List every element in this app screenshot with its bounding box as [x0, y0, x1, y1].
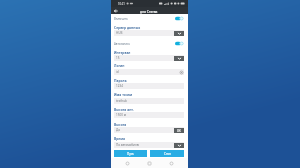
- staticText: ОК: [177, 129, 181, 133]
- button[interactable]: Автозапись: [114, 39, 184, 48]
- button[interactable]: 1234: [114, 83, 184, 89]
- button[interactable]: Да: [114, 127, 184, 133]
- button[interactable]: Recents: [166, 158, 177, 168]
- button[interactable]: Home: [144, 158, 155, 168]
- button[interactable]: Back: [122, 158, 133, 168]
- staticText: HUB: [116, 31, 123, 35]
- staticText: id: [116, 70, 119, 74]
- staticText: Да: [116, 128, 120, 132]
- staticText: Высота ант.: [114, 107, 134, 111]
- button[interactable]: По автомобилю: [114, 142, 184, 148]
- button[interactable]: id: [114, 69, 184, 75]
- button[interactable]: Включить: [114, 14, 184, 23]
- staticText: Время: [114, 136, 125, 140]
- staticText: для Статва: [140, 9, 158, 13]
- staticText: 1234: [116, 84, 123, 88]
- staticText: Пуск: [127, 152, 134, 156]
- staticText: По автомобилю: [116, 143, 140, 147]
- button[interactable]: HUB: [114, 30, 184, 36]
- staticText: Интервал: [114, 50, 131, 54]
- staticText: Пароль: [114, 78, 127, 82]
- staticText: testhub: [116, 99, 127, 103]
- button[interactable]: testhub: [114, 98, 184, 104]
- button[interactable]: Back: [111, 7, 120, 14]
- staticText: 10:21: [118, 2, 125, 6]
- staticText: 1500 м: [116, 113, 126, 117]
- staticText: Сервер данных: [114, 25, 141, 29]
- staticText: Стоп: [164, 152, 171, 156]
- staticText: Автозапись: [114, 42, 131, 46]
- staticText: Имя точки: [114, 92, 133, 96]
- button[interactable]: Стоп: [150, 150, 184, 157]
- button[interactable]: 15: [114, 55, 184, 61]
- button[interactable]: 1500 м: [114, 112, 184, 118]
- staticText: 15: [116, 56, 120, 60]
- staticText: Высота: [114, 122, 127, 126]
- button[interactable]: Пуск: [114, 150, 147, 157]
- staticText: Логин: [114, 63, 125, 67]
- staticText: Включить: [114, 17, 128, 21]
